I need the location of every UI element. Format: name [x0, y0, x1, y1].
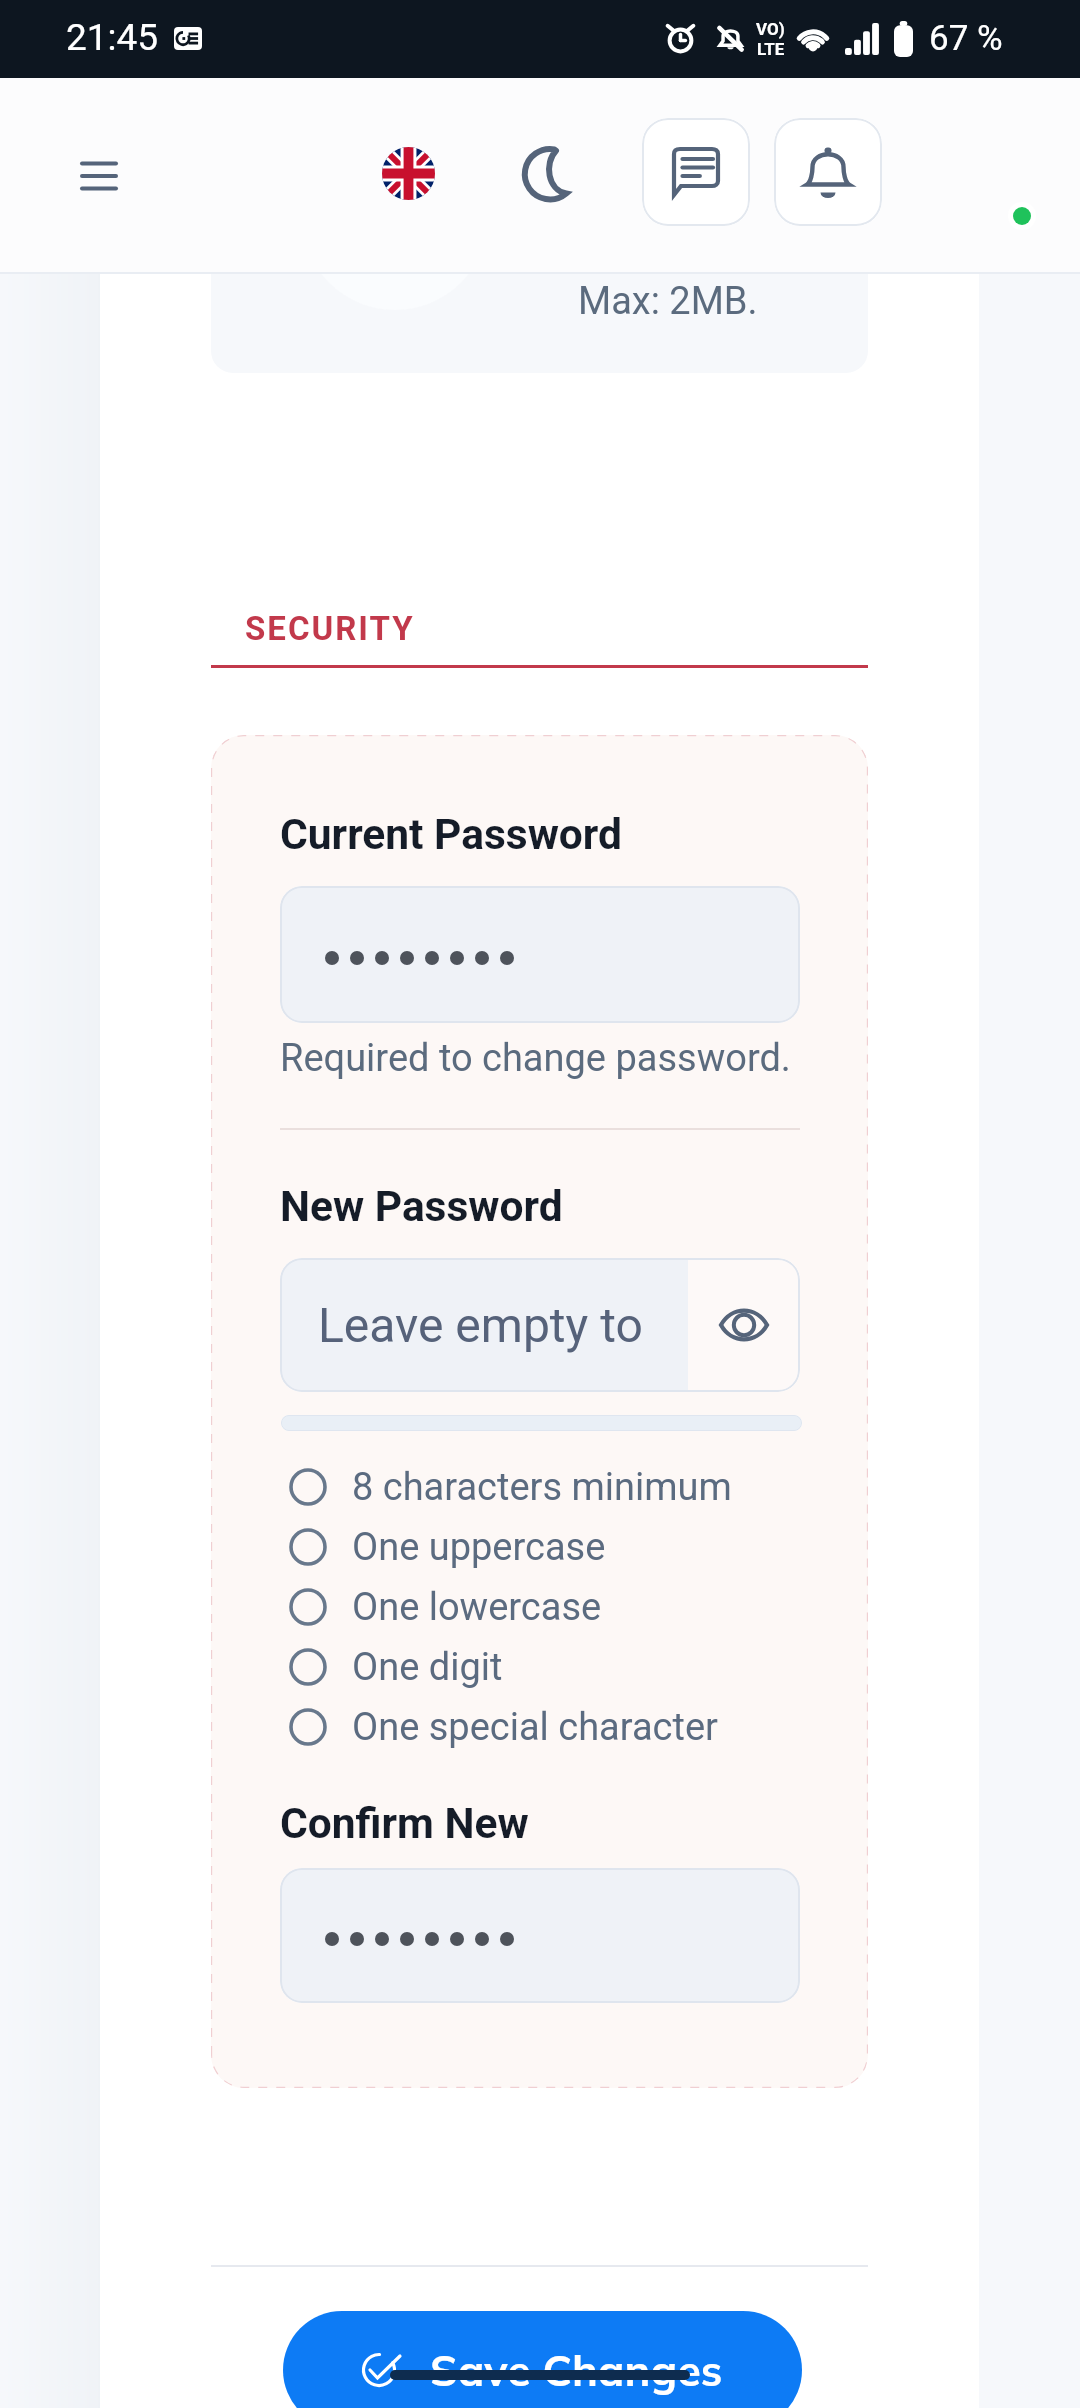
staticText: SECURITY	[245, 609, 415, 648]
staticText: Leave empty to	[318, 1297, 643, 1353]
button[interactable]: Messages	[642, 118, 750, 226]
staticText: One digit	[352, 1645, 503, 1690]
staticText: LTE	[757, 39, 785, 59]
button[interactable]: Language	[365, 130, 451, 216]
button[interactable]: Menu	[51, 128, 147, 224]
staticText: Max: 2MB.	[578, 279, 758, 324]
button[interactable]: Save Changes	[283, 2311, 802, 2408]
button[interactable]: Show password	[688, 1258, 800, 1392]
button[interactable]	[280, 1868, 800, 2003]
staticText: One special character	[352, 1705, 718, 1750]
button[interactable]: Leave empty to	[280, 1258, 688, 1392]
staticText: 21:45	[66, 16, 159, 59]
button[interactable]	[280, 886, 800, 1023]
staticText: One lowercase	[352, 1585, 602, 1630]
button[interactable]: Notifications	[774, 118, 882, 226]
staticText: 8 characters minimum	[352, 1465, 732, 1510]
staticText: New Password	[280, 1182, 563, 1232]
staticText: Save Changes	[430, 2343, 723, 2397]
staticText: Required to change password.	[280, 1036, 791, 1081]
staticText: One uppercase	[352, 1525, 606, 1570]
staticText: Current Password	[280, 810, 622, 860]
staticText: VO)	[756, 19, 785, 39]
button[interactable]: Dark mode	[507, 130, 593, 216]
staticText: Confirm New	[280, 1799, 529, 1849]
staticText: 67 %	[929, 18, 1003, 59]
